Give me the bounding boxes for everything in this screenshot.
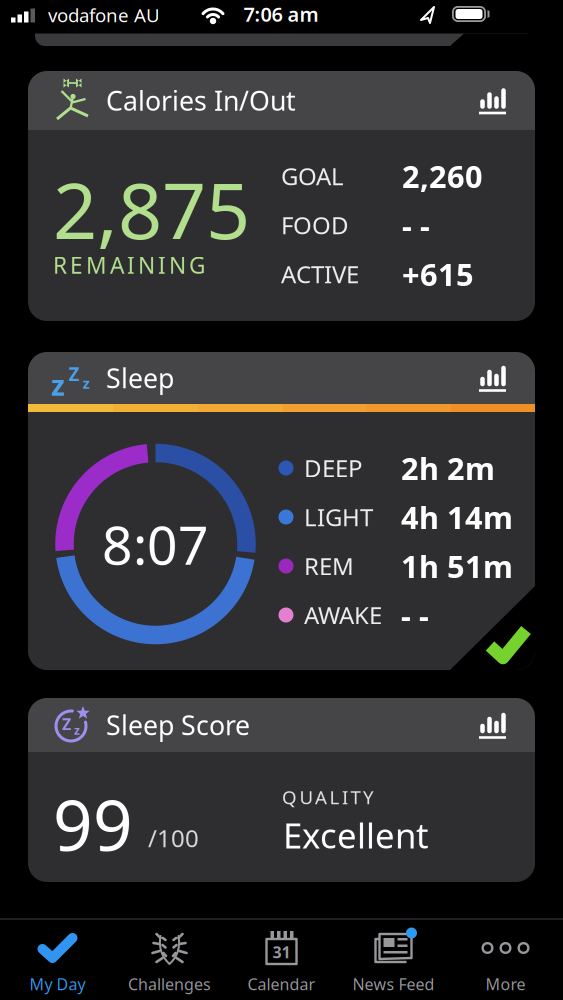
button[interactable]: My Day	[1, 919, 113, 1000]
staticText: My Day	[29, 973, 85, 995]
staticText: 8:07	[102, 509, 209, 579]
staticText: Calories In/Out	[106, 83, 296, 118]
staticText: REMAINING	[53, 250, 206, 280]
staticText: 2,260	[402, 156, 483, 196]
staticText: 99	[53, 778, 133, 870]
button[interactable]: 31	[225, 919, 337, 1000]
staticText: z	[82, 373, 89, 393]
staticText: 1h 51m	[401, 546, 513, 586]
staticText: 31	[272, 941, 290, 963]
staticText: More	[485, 973, 525, 995]
button[interactable]: Z	[28, 698, 535, 882]
staticText: Excellent	[283, 812, 429, 858]
staticText: 7:06 am	[243, 1, 318, 27]
staticText: DEEP	[304, 452, 363, 484]
staticText: Z	[68, 362, 79, 386]
staticText: z	[74, 722, 80, 738]
staticText: GOAL	[281, 160, 344, 192]
button[interactable]: Statistics	[470, 356, 514, 400]
staticText: QUALITY	[282, 785, 374, 809]
staticText: LIGHT	[304, 501, 373, 533]
staticText: AWAKE	[304, 599, 382, 631]
button[interactable]: Challenges	[113, 919, 225, 1000]
staticText: 2h 2m	[401, 448, 495, 488]
staticText: Challenges	[128, 973, 211, 995]
button[interactable]: More	[449, 919, 561, 1000]
staticText: Calendar	[247, 973, 315, 995]
staticText: 2,875	[53, 158, 250, 260]
staticText: Sleep Score	[106, 707, 250, 743]
staticText: REM	[304, 550, 354, 582]
staticText: Z	[62, 713, 71, 735]
staticText: +615	[402, 254, 474, 294]
button[interactable]: Statistics	[470, 78, 514, 122]
button[interactable]: Statistics	[470, 703, 514, 747]
staticText: /100	[148, 822, 199, 854]
staticText: z	[51, 366, 65, 404]
button[interactable]: z	[28, 352, 535, 670]
staticText: Sleep	[106, 360, 174, 396]
staticText: 4h 14m	[401, 497, 513, 537]
button[interactable]: News Feed	[337, 919, 449, 1000]
button[interactable]: Calories In/Out	[28, 71, 535, 321]
staticText: News Feed	[352, 973, 434, 995]
staticText: - -	[402, 205, 430, 245]
staticText: - -	[401, 595, 429, 635]
staticText: ACTIVE	[281, 258, 359, 290]
staticText: vodafone AU	[48, 3, 160, 27]
staticText: FOOD	[281, 209, 349, 241]
